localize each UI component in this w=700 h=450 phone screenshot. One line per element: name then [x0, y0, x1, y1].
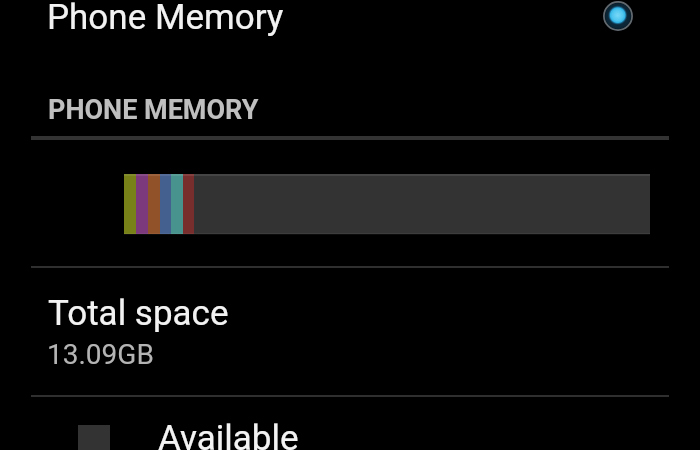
staticText: 13.09GB — [47, 338, 154, 371]
button[interactable]: Total space — [0, 282, 700, 392]
staticText: Phone Memory — [47, 0, 284, 38]
staticText: PHONE MEMORY — [48, 94, 259, 126]
staticText: Available — [158, 418, 299, 450]
button[interactable]: Available — [0, 405, 700, 450]
button[interactable]: Phone memory selected — [594, 0, 642, 40]
button[interactable]: Phone Memory — [20, 0, 320, 46]
button[interactable]: Storage usage breakdown — [124, 174, 650, 234]
staticText: Total space — [48, 293, 229, 334]
